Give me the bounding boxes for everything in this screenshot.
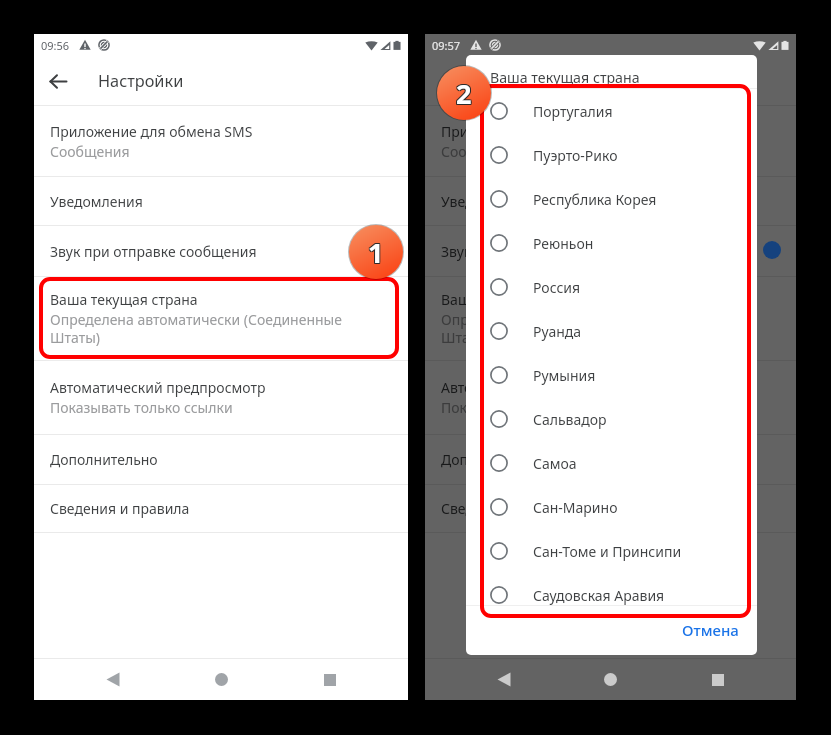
staticText: Настройки [98, 70, 184, 92]
staticText: 1 [369, 234, 385, 271]
staticText: Уведомления [50, 192, 143, 211]
staticText: 2 [456, 75, 472, 112]
button[interactable]: Отмена [664, 606, 757, 648]
button[interactable]: Россия [466, 265, 757, 309]
button[interactable]: Реюньон [466, 221, 757, 265]
staticText: Самоа [533, 454, 577, 473]
button[interactable]: Recents [697, 659, 738, 700]
button[interactable]: Сан-Томе и Принсипи [466, 529, 757, 573]
staticText: Руанда [533, 322, 582, 341]
staticText: 1 [367, 235, 383, 272]
staticText: Португалия [533, 102, 613, 121]
staticText: Сведения и правила [441, 499, 581, 518]
staticText: 1 [369, 235, 385, 272]
staticText: 1 [368, 233, 384, 270]
staticText: 2 [455, 76, 471, 113]
button[interactable]: Дополнительно [425, 435, 796, 484]
button[interactable]: Дополнительно [34, 435, 408, 484]
button[interactable]: Румыния [466, 353, 757, 397]
button[interactable]: Приложение для обмена SMS [34, 106, 408, 176]
staticText: 2 [456, 74, 472, 111]
button[interactable]: Сан-Марино [466, 485, 757, 529]
staticText: 2 [457, 75, 473, 112]
staticText: Ваша текущая страна [441, 290, 589, 309]
staticText: Звук при отправке сообщения [441, 242, 648, 261]
staticText: Отмена [682, 620, 739, 640]
button[interactable]: Home [201, 659, 242, 700]
button[interactable]: Сальвадор [466, 397, 757, 441]
button[interactable]: Автоматический предпросмотр [425, 361, 796, 434]
button[interactable]: Recents [697, 659, 738, 700]
button[interactable]: Саудовская Аравия [466, 573, 757, 605]
staticText: Сообщения [441, 142, 521, 161]
staticText: Сообщения [50, 142, 130, 161]
staticText: Звук при отправке сообщения [50, 242, 257, 261]
staticText: Реюньон [533, 234, 594, 253]
staticText: Приложение для обмена SMS [441, 122, 644, 141]
staticText: 1 [368, 235, 384, 272]
staticText: 09:57 [432, 38, 461, 53]
button[interactable]: Back [483, 659, 524, 700]
button[interactable]: Back [483, 659, 524, 700]
button[interactable]: Автоматический предпросмотр [34, 361, 408, 434]
staticText: Настройки [489, 70, 575, 92]
staticText: Определена автоматически (Соединенные Шт… [441, 310, 736, 347]
staticText: Дополнительно [441, 450, 549, 469]
staticText: Саудовская Аравия [533, 586, 665, 605]
staticText: Уведомления [441, 192, 534, 211]
button[interactable]: Recents [309, 659, 350, 700]
staticText: 2 [455, 74, 471, 111]
button[interactable]: Ваша текущая страна [425, 277, 796, 360]
staticText: Определена автоматически (Соединенные Шт… [50, 310, 348, 347]
button[interactable]: Сведения и правила [425, 485, 796, 532]
button[interactable]: Home [590, 659, 631, 700]
staticText: Показывать только ссылки [50, 398, 233, 417]
staticText: 1 [367, 234, 383, 271]
button[interactable]: Уведомления [34, 177, 408, 225]
button[interactable]: Уведомления [425, 177, 796, 225]
staticText: Ваша текущая страна [50, 290, 198, 309]
button[interactable]: Back [425, 57, 473, 105]
staticText: 1 [368, 234, 384, 271]
button[interactable]: Руанда [466, 309, 757, 353]
staticText: Автоматический предпросмотр [441, 378, 657, 397]
staticText: Приложение для обмена SMS [50, 122, 253, 141]
button[interactable]: Ваша текущая страна [34, 277, 408, 360]
staticText: Сведения и правила [50, 499, 190, 518]
staticText: Сальвадор [533, 410, 607, 429]
button[interactable]: Звук при отправке сообщения [34, 226, 408, 276]
staticText: 2 [455, 75, 471, 112]
button[interactable]: Back [92, 659, 133, 700]
staticText: 1 [367, 233, 383, 270]
staticText: 1 [369, 233, 385, 270]
staticText: Россия [533, 278, 581, 297]
button[interactable]: Самоа [466, 441, 757, 485]
staticText: Румыния [533, 366, 596, 385]
staticText: 09:56 [41, 38, 70, 53]
staticText: Сан-Томе и Принсипи [533, 542, 682, 561]
staticText: Ваша текущая страна [490, 68, 640, 87]
button[interactable]: Республика Корея [466, 177, 757, 221]
button[interactable]: Сведения и правила [34, 485, 408, 532]
button[interactable]: Пуэрто-Рико [466, 133, 757, 177]
staticText: Республика Корея [533, 190, 657, 209]
staticText: 09:57 [432, 38, 461, 53]
staticText: 2 [457, 76, 473, 113]
staticText: Автоматический предпросмотр [50, 378, 266, 397]
staticText: Показывать только ссылки [441, 398, 624, 417]
button[interactable]: Home [590, 659, 631, 700]
staticText: Пуэрто-Рико [533, 146, 618, 165]
staticText: Дополнительно [50, 450, 158, 469]
staticText: 2 [457, 74, 473, 111]
staticText: Сан-Марино [533, 498, 618, 517]
button[interactable]: Приложение для обмена SMS [425, 106, 796, 176]
staticText: 2 [456, 76, 472, 113]
button[interactable]: Португалия [466, 89, 757, 133]
button[interactable]: Back [34, 57, 82, 105]
button[interactable]: Звук при отправке сообщения [425, 226, 796, 276]
